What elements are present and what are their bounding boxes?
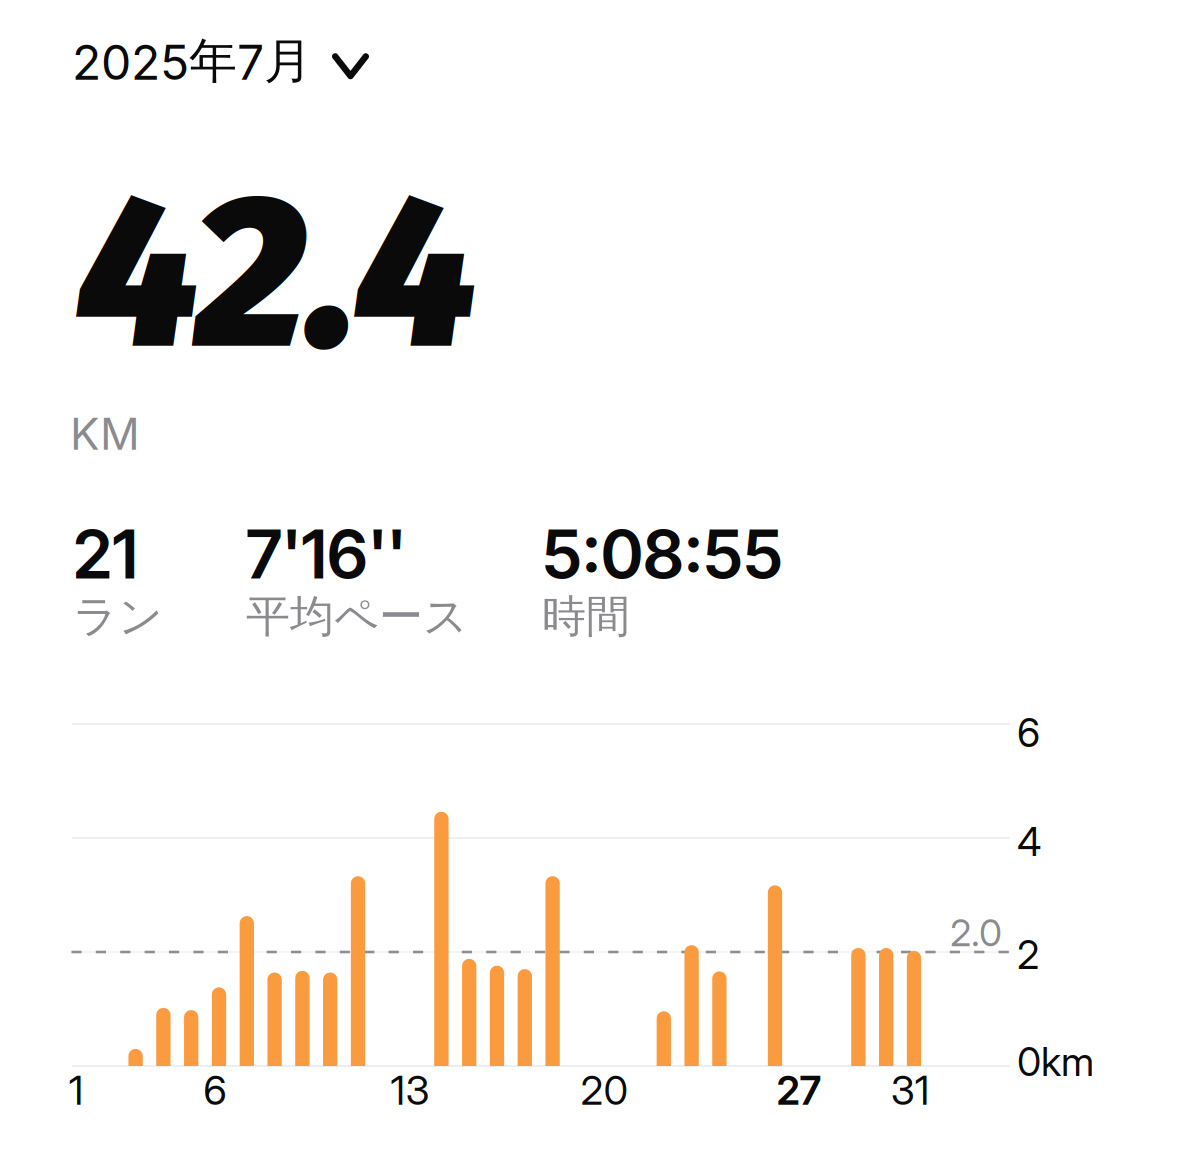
staticText: 6: [203, 1066, 227, 1114]
staticText: 2.0: [950, 910, 1002, 955]
staticText: 7'16'': [246, 514, 406, 595]
staticText: 13: [390, 1066, 429, 1114]
staticText: 21: [73, 514, 138, 595]
staticText: 2: [1017, 931, 1039, 979]
staticText: 2025年7月: [72, 31, 312, 91]
staticText: ラン: [73, 589, 163, 644]
staticText: 4: [1017, 818, 1041, 866]
staticText: 時間: [542, 589, 630, 644]
staticText: KM: [70, 407, 140, 460]
staticText: 42.4: [76, 145, 477, 403]
staticText: 6: [1017, 709, 1040, 757]
button[interactable]: 2025年7月: [0, 15, 397, 107]
staticText: 1: [69, 1066, 84, 1114]
staticText: 31: [891, 1066, 930, 1114]
staticText: 平均ペース: [246, 589, 468, 644]
staticText: 0km: [1017, 1038, 1094, 1086]
button[interactable]: 42.4: [0, 140, 1179, 645]
staticText: 20: [580, 1066, 628, 1114]
staticText: 27: [777, 1066, 822, 1114]
staticText: 5:08:55: [542, 514, 783, 595]
